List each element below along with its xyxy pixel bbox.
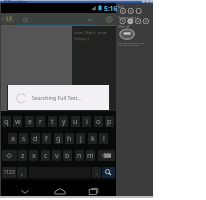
button[interactable]: Home: [54, 185, 66, 195]
button[interactable]: r: [36, 116, 45, 127]
staticText: b: [65, 151, 70, 161]
button[interactable]: u: [71, 116, 80, 127]
button[interactable]: Shift: [2, 150, 17, 161]
staticText: Hardware keys not avail see AVD setup in…: [118, 41, 145, 47]
button[interactable]: Search: [102, 167, 115, 178]
button[interactable]: i: [82, 116, 91, 127]
button[interactable]: l: [99, 133, 108, 144]
button[interactable]: m: [86, 150, 95, 161]
button[interactable]: h: [65, 133, 74, 144]
button[interactable]: b: [63, 150, 72, 161]
staticText: Hardware keys 1: [118, 16, 139, 19]
button[interactable]: q: [2, 116, 11, 127]
staticText: x: [32, 151, 36, 161]
button[interactable]: p: [105, 116, 114, 127]
button[interactable]: ,: [17, 167, 27, 178]
button[interactable]: c: [41, 150, 50, 161]
button[interactable]: x: [29, 150, 38, 161]
button[interactable]: e: [25, 116, 34, 127]
staticText: q: [4, 117, 9, 127]
button[interactable]: Back: [19, 185, 31, 195]
button[interactable]: [5, 14, 14, 23]
button[interactable]: f: [42, 133, 51, 144]
staticText: l: [103, 134, 105, 144]
button[interactable]: boat, Black; boat (Sharp;): [74, 30, 116, 42]
staticText: ,: [21, 168, 23, 178]
staticText: v: [55, 151, 59, 161]
staticText: j: [80, 134, 82, 144]
staticText: Searching Full Text...: [32, 94, 82, 101]
staticText: w: [15, 117, 21, 127]
button[interactable]: o: [94, 116, 103, 127]
staticText: f: [45, 134, 48, 144]
staticText: y: [62, 117, 66, 127]
staticText: o: [96, 117, 101, 127]
other: Hardware keyboard: [117, 18, 153, 25]
button[interactable]: a: [8, 133, 17, 144]
button[interactable]: g: [54, 133, 63, 144]
button[interactable]: Backspace: [98, 150, 115, 161]
staticText: g: [56, 134, 61, 144]
button[interactable]: More options: [106, 16, 113, 23]
button[interactable]: v: [52, 150, 61, 161]
button[interactable]: s: [19, 133, 28, 144]
staticText: p: [107, 117, 112, 127]
staticText: u: [73, 117, 78, 127]
button[interactable]: ?123: [2, 167, 16, 178]
staticText: 5554:emulator: [4, 0, 27, 4]
button[interactable]: j: [76, 133, 85, 144]
staticText: .: [96, 168, 98, 178]
button[interactable]: Recent apps: [88, 185, 100, 195]
staticText: d: [33, 134, 38, 144]
button[interactable]: t: [48, 116, 57, 127]
staticText: i: [86, 117, 88, 127]
staticText: boat, Black; boat (Sharp;): [74, 30, 107, 42]
staticText: s: [22, 134, 26, 144]
staticText: r: [39, 117, 42, 127]
staticText: DPad: off: [118, 25, 130, 28]
staticText: k: [91, 134, 95, 144]
button[interactable]: k: [88, 133, 97, 144]
button[interactable]: z: [18, 150, 27, 161]
other: Hardware buttons: [117, 8, 153, 14]
staticText: e: [28, 117, 32, 127]
staticText: Keys:: [118, 5, 125, 8]
button[interactable]: Clear query: [88, 18, 92, 22]
staticText: h: [67, 134, 72, 144]
button[interactable]: d: [31, 133, 40, 144]
staticText: z: [21, 151, 25, 161]
staticText: ?123: [4, 169, 15, 176]
other: D-pad: [118, 28, 138, 41]
button[interactable]: Search: [22, 17, 29, 24]
staticText: m: [87, 151, 94, 161]
staticText: t: [51, 117, 54, 127]
button[interactable]: Navigate up: [1, 16, 5, 21]
staticText: a: [11, 134, 15, 144]
staticText: c: [44, 151, 48, 161]
staticText: n: [77, 151, 82, 161]
button[interactable]: .: [92, 167, 101, 178]
button[interactable]: y: [59, 116, 68, 127]
button[interactable]: w: [13, 116, 22, 127]
staticText: 5:16: [104, 4, 118, 12]
button[interactable]: n: [75, 150, 84, 161]
